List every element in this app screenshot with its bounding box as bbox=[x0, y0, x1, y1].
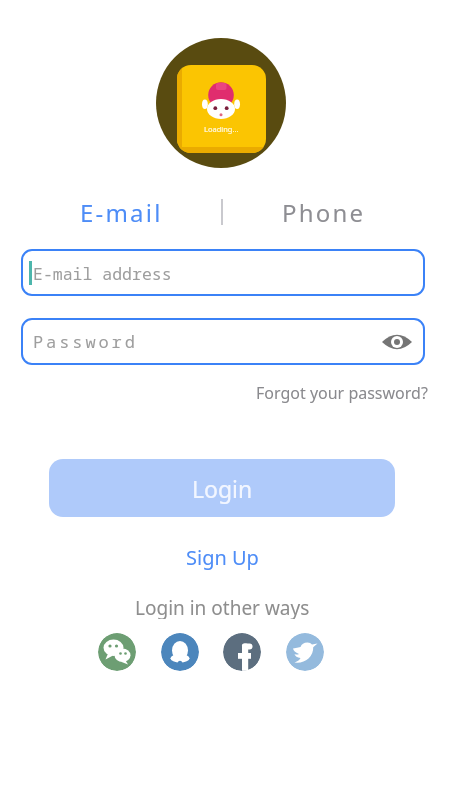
button[interactable]: Sign Up bbox=[147, 544, 297, 570]
button[interactable]: Phone bbox=[278, 196, 370, 226]
staticText: Login bbox=[192, 473, 253, 504]
button[interactable] bbox=[223, 633, 261, 671]
button[interactable] bbox=[161, 633, 199, 671]
staticText: E-mail address bbox=[33, 262, 172, 284]
button[interactable] bbox=[382, 331, 412, 353]
button[interactable] bbox=[98, 633, 136, 671]
button[interactable]: E-mail address bbox=[21, 249, 425, 296]
button[interactable]: E-mail bbox=[75, 196, 167, 226]
staticText: Phone bbox=[282, 196, 366, 226]
staticText: Loading... bbox=[204, 124, 239, 134]
staticText: E-mail bbox=[80, 196, 163, 226]
staticText: Login in other ways bbox=[135, 595, 310, 619]
button[interactable]: Login bbox=[49, 459, 395, 517]
button[interactable]: Forgot your password? bbox=[256, 382, 428, 404]
button[interactable] bbox=[286, 633, 324, 671]
button[interactable]: Password bbox=[21, 318, 425, 365]
staticText: Sign Up bbox=[186, 544, 259, 570]
staticText: Password bbox=[33, 330, 138, 353]
